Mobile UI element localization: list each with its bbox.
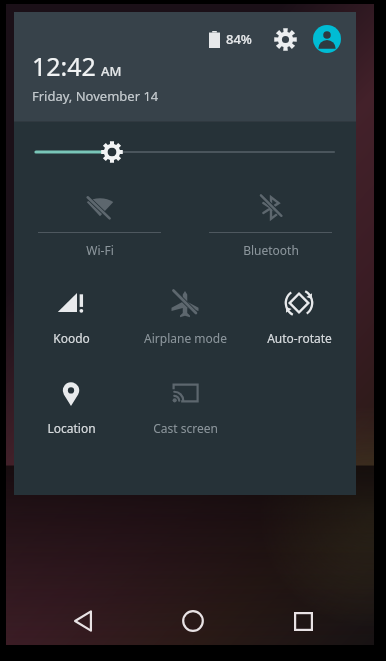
button[interactable]: Brightness bbox=[14, 122, 356, 182]
staticText: 12:42 bbox=[32, 49, 96, 83]
button[interactable]: Home bbox=[166, 597, 220, 645]
staticText: Wi-Fi bbox=[86, 242, 114, 258]
button[interactable]: User profile bbox=[312, 24, 342, 54]
button[interactable]: Settings bbox=[270, 24, 300, 54]
button[interactable]: Cast screen bbox=[128, 364, 242, 436]
button[interactable]: Recent apps bbox=[276, 597, 330, 645]
staticText: Bluetooth bbox=[243, 242, 299, 258]
button[interactable]: Location bbox=[14, 364, 128, 436]
button[interactable]: Auto-rotate bbox=[242, 274, 356, 346]
staticText: 84% bbox=[226, 30, 252, 48]
button[interactable]: Airplane mode bbox=[128, 274, 242, 346]
staticText: Friday, November 14 bbox=[32, 87, 159, 105]
button[interactable]: 12:42 bbox=[32, 49, 159, 105]
button[interactable]: Wi-Fi bbox=[14, 182, 185, 258]
staticText: Location bbox=[47, 420, 96, 436]
staticText: Koodo bbox=[53, 330, 90, 346]
staticText: Cast screen bbox=[153, 420, 218, 436]
staticText: Airplane mode bbox=[144, 330, 227, 346]
button[interactable]: Back bbox=[56, 597, 110, 645]
button[interactable]: Koodo bbox=[14, 274, 128, 346]
button[interactable]: Bluetooth bbox=[185, 182, 356, 258]
staticText: Auto-rotate bbox=[267, 330, 332, 346]
staticText: AM bbox=[101, 62, 122, 80]
